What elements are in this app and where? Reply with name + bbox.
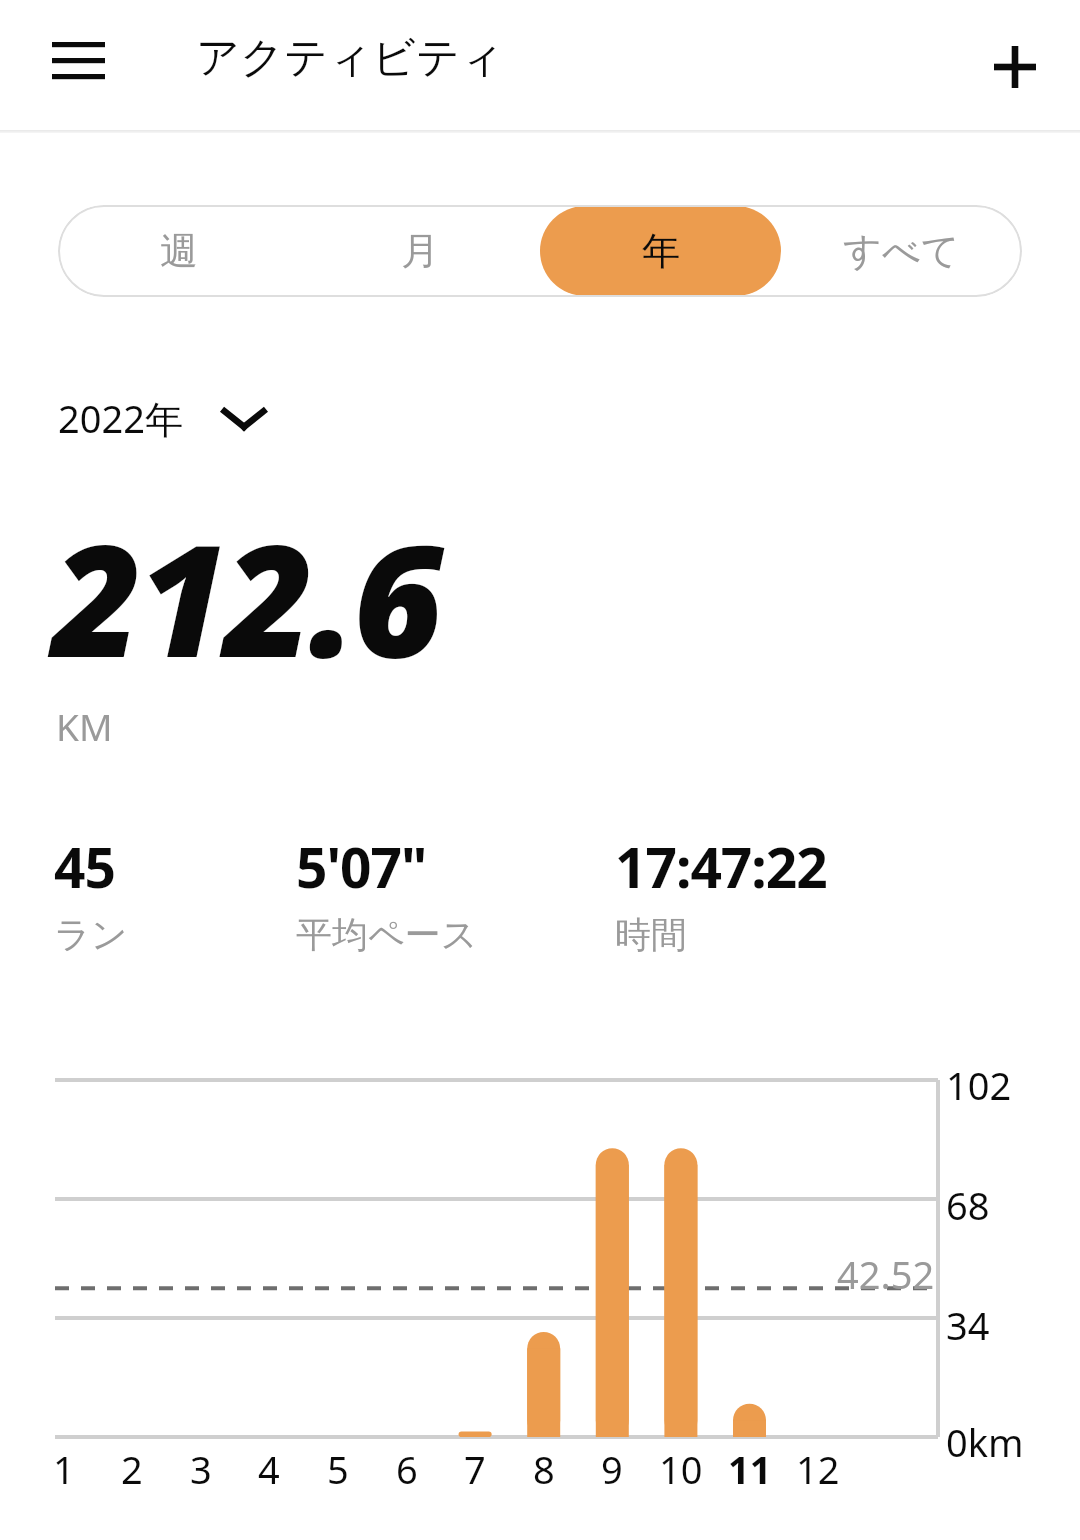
staticText: 45 xyxy=(54,829,115,904)
button[interactable]: 月 xyxy=(299,205,540,297)
button[interactable]: 2022年 xyxy=(46,382,271,454)
staticText: 2 xyxy=(121,1443,143,1495)
staticText: 12 xyxy=(796,1443,840,1495)
button[interactable]: Menu xyxy=(40,26,118,106)
staticText: 1 xyxy=(53,1443,75,1495)
button[interactable]: Add activity xyxy=(975,26,1055,106)
staticText: 月 xyxy=(401,227,439,275)
staticText: 3 xyxy=(190,1443,212,1495)
staticText: 0km xyxy=(946,1416,1024,1468)
staticText: 102 xyxy=(946,1059,1012,1111)
staticText: 平均ペース xyxy=(296,912,478,957)
staticText: ラン xyxy=(54,912,128,957)
staticText: 42.52 xyxy=(837,1248,935,1300)
staticText: 9 xyxy=(601,1443,623,1495)
staticText: 年 xyxy=(642,227,680,275)
staticText: 11 xyxy=(728,1443,772,1495)
staticText: 212.6 xyxy=(52,491,440,702)
staticText: 68 xyxy=(946,1179,990,1231)
button[interactable]: 週 xyxy=(58,205,299,297)
button[interactable]: すべて xyxy=(781,205,1022,297)
staticText: 34 xyxy=(946,1299,990,1351)
button[interactable]: 年 xyxy=(540,205,781,297)
staticText: 4 xyxy=(258,1443,280,1495)
staticText: KM xyxy=(56,701,113,751)
staticText: 時間 xyxy=(615,912,687,957)
staticText: 2022年 xyxy=(58,392,183,444)
staticText: すべて xyxy=(843,227,960,275)
staticText: 5'07" xyxy=(296,829,427,904)
staticText: アクティビティ xyxy=(196,31,505,85)
staticText: 7 xyxy=(464,1443,486,1495)
staticText: 8 xyxy=(533,1443,555,1495)
staticText: 週 xyxy=(160,227,198,275)
staticText: 6 xyxy=(396,1443,418,1495)
staticText: 5 xyxy=(327,1443,349,1495)
staticText: 17:47:22 xyxy=(615,829,827,904)
staticText: 10 xyxy=(659,1443,703,1495)
